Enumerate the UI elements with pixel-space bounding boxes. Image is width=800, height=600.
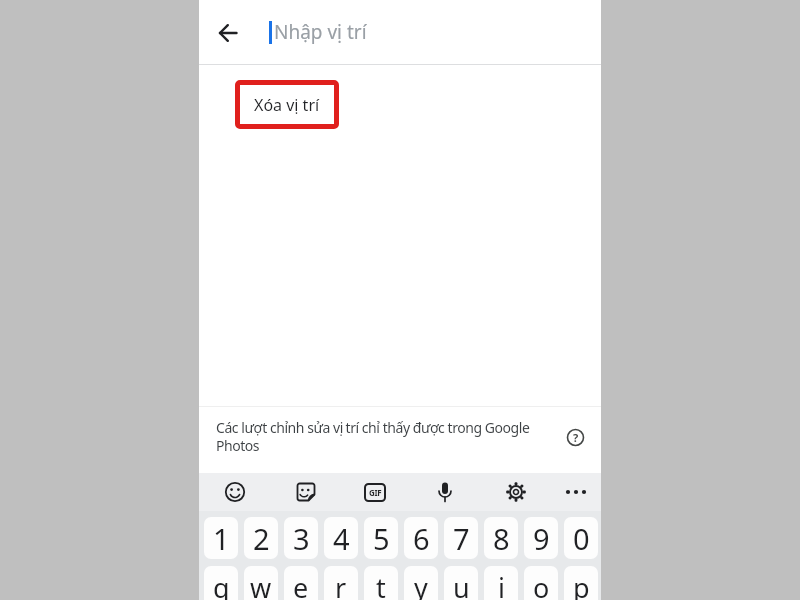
- staticText: i: [498, 569, 505, 600]
- button[interactable]: Xóa vị trí: [235, 80, 339, 129]
- staticText: 0: [573, 519, 590, 558]
- button[interactable]: y: [404, 566, 438, 600]
- staticText: Nhập vị trí: [274, 19, 367, 45]
- button[interactable]: 3: [284, 517, 318, 559]
- staticText: 6: [413, 519, 430, 558]
- button[interactable]: t: [364, 566, 398, 600]
- button[interactable]: 1: [204, 517, 238, 559]
- staticText: 5: [373, 519, 390, 558]
- staticText: ?: [573, 430, 579, 445]
- staticText: 9: [533, 519, 550, 558]
- button[interactable]: 4: [324, 517, 358, 559]
- button[interactable]: r: [324, 566, 358, 600]
- button[interactable]: 9: [524, 517, 558, 559]
- staticText: u: [453, 569, 470, 600]
- button[interactable]: 6: [404, 517, 438, 559]
- staticText: 8: [493, 519, 510, 558]
- button[interactable]: q: [204, 566, 238, 600]
- button[interactable]: [212, 17, 244, 49]
- staticText: 3: [293, 519, 310, 558]
- staticText: 2: [253, 519, 270, 558]
- button[interactable]: [291, 477, 321, 507]
- button[interactable]: GIF: [360, 477, 390, 507]
- button[interactable]: u: [444, 566, 478, 600]
- staticText: 4: [333, 519, 350, 558]
- staticText: Các lượt chỉnh sửa vị trí chỉ thấy được …: [216, 418, 530, 455]
- staticText: p: [573, 569, 590, 600]
- staticText: w: [250, 569, 272, 600]
- staticText: y: [414, 569, 428, 600]
- button[interactable]: w: [244, 566, 278, 600]
- staticText: Xóa vị trí: [254, 94, 320, 116]
- staticText: 1: [213, 519, 230, 558]
- button[interactable]: 8: [484, 517, 518, 559]
- staticText: o: [533, 569, 550, 600]
- staticText: 7: [453, 519, 470, 558]
- staticText: q: [213, 569, 230, 600]
- button[interactable]: [220, 477, 250, 507]
- button[interactable]: ?: [566, 428, 585, 447]
- staticText: e: [293, 569, 309, 600]
- button[interactable]: 7: [444, 517, 478, 559]
- button[interactable]: 2: [244, 517, 278, 559]
- staticText: r: [335, 569, 347, 600]
- button[interactable]: i: [484, 566, 518, 600]
- staticText: t: [376, 569, 386, 600]
- button[interactable]: e: [284, 566, 318, 600]
- button[interactable]: 5: [364, 517, 398, 559]
- button[interactable]: p: [564, 566, 598, 600]
- button[interactable]: o: [524, 566, 558, 600]
- button[interactable]: 0: [564, 517, 598, 559]
- button[interactable]: [501, 477, 531, 507]
- staticText: GIF: [369, 487, 382, 498]
- button[interactable]: [561, 477, 591, 507]
- button[interactable]: [430, 477, 460, 507]
